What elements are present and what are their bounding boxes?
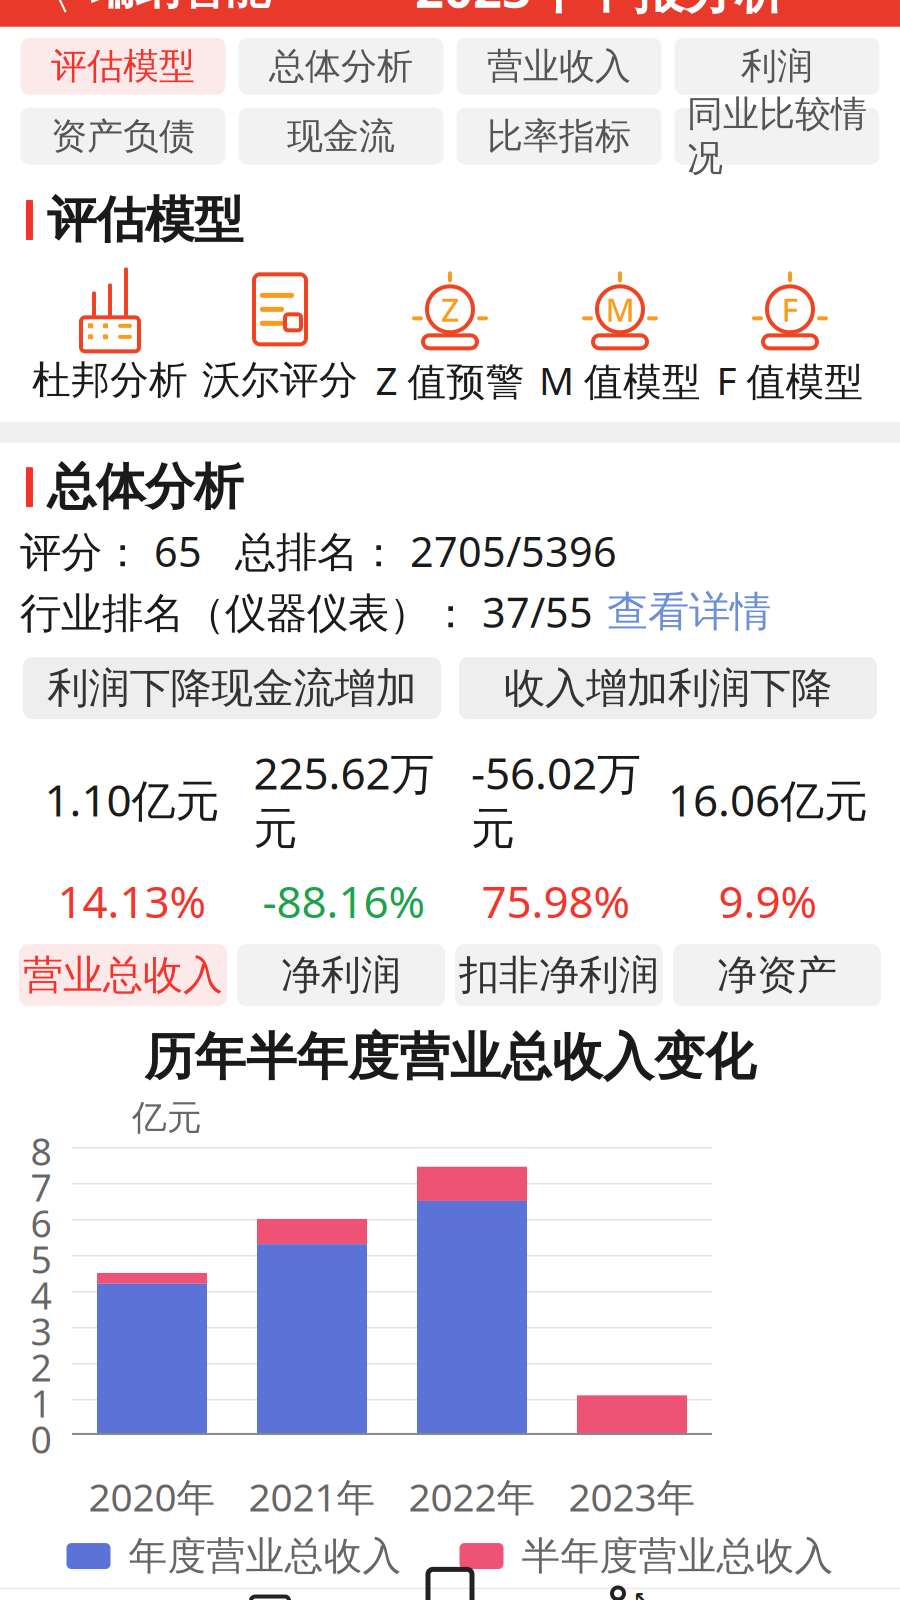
staticText: 行业排名（仪器仪表）： 37/55 (20, 584, 593, 639)
staticText: 评估模型 (51, 44, 195, 88)
staticText: 9.9% (718, 872, 817, 930)
staticText: 评估模型 (47, 190, 243, 250)
staticText: 同业比较情况 (687, 92, 867, 180)
staticText: 2 (30, 1342, 51, 1392)
staticText: ↖ (633, 1587, 651, 1600)
staticText: 营业收入 (487, 44, 631, 88)
staticText: 评分： 65 总排名： 2705/5396 (20, 523, 617, 578)
staticText: 2022年 (408, 1471, 535, 1522)
button[interactable]: M (535, 264, 705, 406)
staticText: 0 (30, 1414, 51, 1464)
staticText: M (605, 288, 634, 331)
staticText: 2020年 (88, 1471, 215, 1522)
button[interactable]: 亮点&风险 (360, 1592, 540, 1600)
staticText: 1.10亿元 (44, 770, 219, 829)
button[interactable]: 净资产 (673, 944, 881, 1006)
button[interactable]: 沃尔评分 (195, 266, 365, 404)
button[interactable]: 利润 (674, 38, 879, 95)
staticText: Z 值预警 (375, 354, 524, 406)
staticText: 收入增加利润下降 (504, 663, 832, 714)
staticText: 利润下降现金流增加 (47, 663, 416, 714)
button[interactable]: 同业比较情况 (674, 108, 879, 165)
staticText: 14.13% (57, 872, 206, 930)
button[interactable]: 资产负债 (20, 108, 225, 165)
staticText: -56.02万元 (471, 743, 641, 856)
staticText: 净利润 (281, 951, 401, 1000)
staticText: 〈 (15, 0, 74, 24)
staticText: 3 (30, 1306, 51, 1356)
button[interactable]: 总体分析 (238, 38, 443, 95)
staticText: 225.62万元 (253, 743, 434, 856)
staticText: 现金流 (287, 114, 395, 158)
staticText: 5 (30, 1234, 51, 1284)
staticText: 比率指标 (487, 114, 631, 158)
button[interactable]: 查看详情 (607, 586, 771, 637)
staticText: F 值模型 (716, 354, 863, 406)
button[interactable]: 收入增加利润下降 (459, 657, 877, 719)
staticText: 营业总收入 (23, 951, 223, 1000)
staticText: M 值模型 (539, 354, 701, 406)
staticText: 沃尔评分 (202, 356, 358, 404)
staticText: 扣非净利润 (459, 951, 659, 1000)
staticText: 4 (30, 1270, 51, 1320)
staticText: -88.16% (262, 872, 425, 930)
button[interactable]: 比率指标 (456, 108, 661, 165)
staticText: 半年度营业总收入 (521, 1532, 833, 1580)
button[interactable]: 返回 (0, 0, 90, 24)
button[interactable]: 净利润 (237, 944, 445, 1006)
button[interactable]: F (705, 264, 875, 406)
staticText: 历年半年度营业总收入变化 (144, 1026, 756, 1088)
staticText: 2023年 (568, 1471, 695, 1522)
staticText: 2023年中报分析 (415, 0, 786, 22)
staticText: F (781, 288, 798, 331)
button[interactable]: 评估模型 (20, 38, 225, 95)
staticText: 年度营业总收入 (128, 1532, 401, 1580)
staticText: Z (441, 288, 459, 331)
staticText: 总体分析 (269, 44, 413, 88)
staticText: 2021年 (248, 1471, 375, 1522)
button[interactable]: ↘ (540, 1592, 720, 1600)
staticText: 75.98% (481, 872, 630, 930)
staticText: 亿元 (132, 1096, 202, 1139)
button[interactable]: Z (365, 264, 535, 406)
button[interactable]: 现金流 (238, 108, 443, 165)
staticText: 杜邦分析 (32, 356, 188, 404)
staticText: 资产负债 (51, 114, 195, 158)
staticText: 瑞纳智能 (90, 0, 270, 16)
button[interactable]: 杜邦分析 (25, 266, 195, 404)
button[interactable]: 利润下降现金流增加 (23, 657, 441, 719)
staticText: 16.06亿元 (668, 770, 868, 829)
staticText: 利润 (741, 44, 813, 88)
staticText: 7 (30, 1162, 51, 1212)
staticText: 净资产 (717, 951, 837, 1000)
staticText: 查看详情 (607, 586, 771, 637)
button[interactable]: 扣非净利润 (455, 944, 663, 1006)
button[interactable]: 营业收入 (456, 38, 661, 95)
staticText: 1 (30, 1378, 51, 1428)
button[interactable]: 公司简况 (180, 1592, 360, 1600)
button[interactable]: 营业总收入 (19, 944, 227, 1006)
staticText: 8 (30, 1126, 51, 1176)
button[interactable]: 2023年中报分析 (415, 0, 900, 24)
staticText: 6 (30, 1198, 51, 1248)
staticText: 总体分析 (47, 457, 243, 517)
